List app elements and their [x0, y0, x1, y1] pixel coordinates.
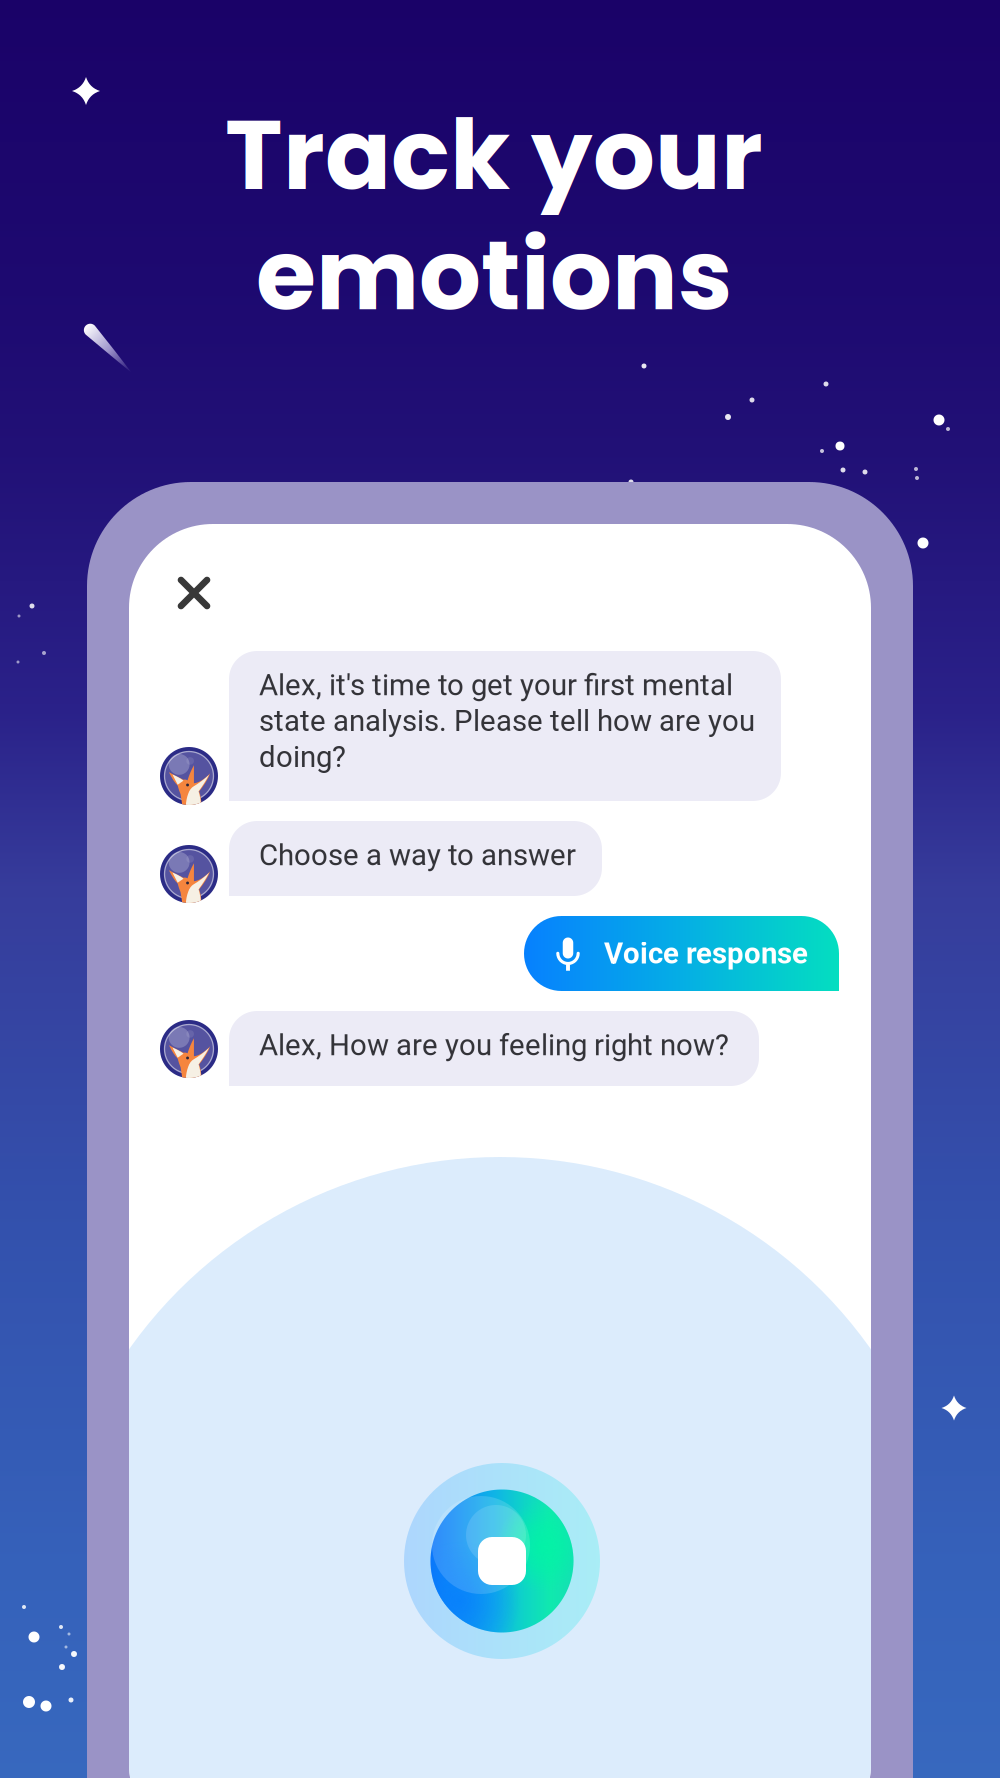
staticText: Choose a way to answer — [259, 838, 576, 872]
staticText: emotions — [256, 207, 732, 343]
staticText: Alex, it's time to get your first mental… — [259, 668, 755, 774]
button[interactable]: Stop recording — [404, 1463, 600, 1659]
staticText: Voice response — [604, 936, 808, 971]
staticText: Track your — [225, 87, 763, 223]
button[interactable]: Voice response — [524, 916, 839, 991]
staticText: Alex, How are you feeling right now? — [259, 1028, 729, 1062]
button[interactable]: Close — [158, 557, 230, 629]
